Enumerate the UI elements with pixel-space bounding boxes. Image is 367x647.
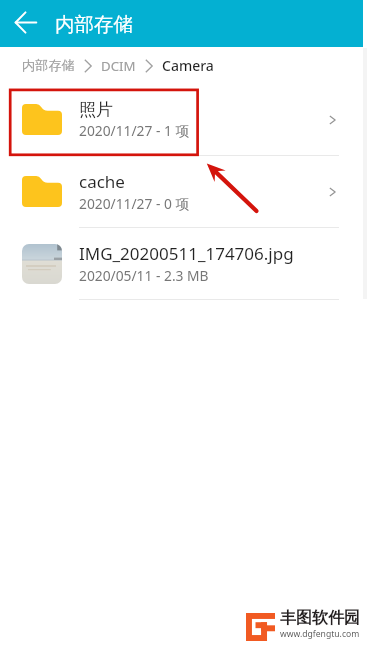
staticText: 2020/11/27 - 0 项 bbox=[79, 194, 190, 213]
staticText: www.dgfengtu.com bbox=[280, 628, 360, 640]
button[interactable]: 照片 bbox=[0, 84, 367, 155]
staticText: 照片 bbox=[79, 99, 113, 120]
button[interactable]: cache bbox=[0, 156, 367, 227]
staticText: 内部存储 bbox=[55, 12, 133, 37]
staticText: 2020/11/27 - 1 项 bbox=[79, 121, 190, 140]
staticText: 2020/05/11 - 2.3 MB bbox=[79, 266, 209, 285]
staticText: 丰图软件园 bbox=[280, 608, 360, 628]
staticText: cache bbox=[79, 170, 125, 193]
button[interactable]: Back bbox=[0, 0, 55, 47]
staticText: DCIM bbox=[101, 57, 136, 75]
staticText: Camera bbox=[162, 56, 214, 75]
staticText: 内部存储 bbox=[22, 57, 75, 74]
staticText: IMG_20200511_174706.jpg bbox=[79, 242, 294, 265]
button[interactable]: IMG_20200511_174706.jpg bbox=[0, 228, 367, 299]
